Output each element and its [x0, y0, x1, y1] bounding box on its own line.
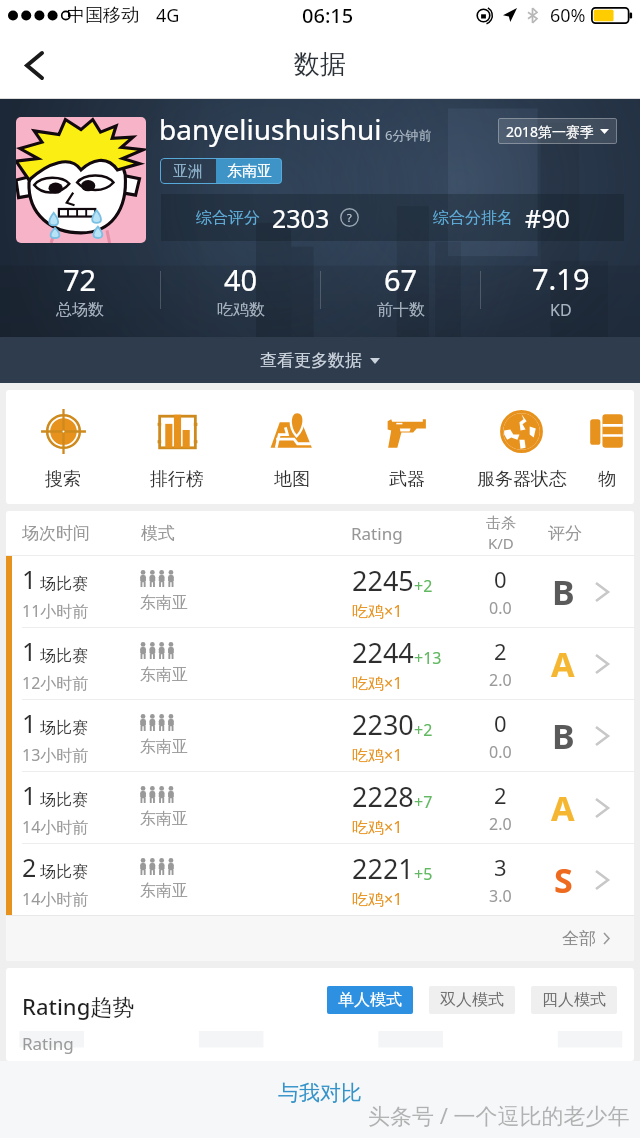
- staticText: 地图: [274, 468, 310, 491]
- staticText: 吃鸡数: [217, 300, 265, 320]
- staticText: 亚洲: [173, 162, 203, 181]
- staticText: 总场数: [56, 300, 104, 320]
- staticText: 2: [494, 636, 507, 666]
- staticText: 2018第一赛季: [506, 122, 595, 141]
- button[interactable]: 地图: [234, 390, 349, 504]
- staticText: 综合评分: [196, 208, 260, 228]
- staticText: 2.0: [489, 813, 512, 835]
- staticText: 2.0: [489, 669, 512, 691]
- staticText: 前十数: [377, 300, 425, 320]
- staticText: 4G: [156, 3, 180, 28]
- staticText: 物: [598, 468, 616, 491]
- staticText: 13小时前: [22, 744, 89, 766]
- button[interactable]: 四人模式: [531, 986, 617, 1014]
- staticText: 与我对比: [278, 1080, 362, 1106]
- staticText: 查看更多数据: [260, 350, 362, 371]
- button[interactable]: 排行榜: [120, 390, 234, 504]
- button[interactable]: Avatar: [16, 117, 146, 243]
- staticText: 67: [384, 260, 418, 299]
- staticText: 东南亚: [140, 809, 188, 829]
- staticText: ?: [347, 210, 352, 225]
- button[interactable]: 全部: [6, 916, 634, 961]
- button[interactable]: 双人模式: [429, 986, 515, 1014]
- staticText: 60%: [550, 3, 586, 28]
- staticText: 1: [22, 634, 37, 668]
- staticText: 1: [22, 562, 37, 596]
- staticText: +13: [414, 647, 442, 669]
- staticText: 场次时间: [22, 523, 90, 544]
- staticText: +5: [414, 863, 433, 885]
- staticText: 场比赛: [40, 718, 88, 738]
- staticText: 头条号 / 一个逗比的老少年: [368, 1100, 630, 1130]
- staticText: 场比赛: [40, 646, 88, 666]
- button[interactable]: 1: [6, 772, 634, 843]
- staticText: 东南亚: [140, 593, 188, 613]
- staticText: 7.19: [532, 259, 590, 298]
- staticText: 3: [494, 852, 507, 882]
- button[interactable]: 单人模式: [327, 986, 413, 1014]
- button[interactable]: 亚洲: [160, 158, 216, 184]
- staticText: S: [554, 857, 573, 903]
- staticText: 12小时前: [22, 672, 89, 694]
- staticText: 1: [22, 706, 37, 740]
- staticText: 武器: [389, 468, 425, 491]
- staticText: 单人模式: [338, 990, 402, 1010]
- staticText: 综合分排名: [433, 208, 513, 228]
- staticText: 全部: [562, 928, 596, 949]
- staticText: +2: [414, 719, 433, 741]
- staticText: 6分钟前: [385, 126, 432, 144]
- staticText: 吃鸡×1: [352, 744, 403, 766]
- staticText: 40: [224, 260, 258, 299]
- button[interactable]: Back: [0, 31, 68, 99]
- staticText: 0.0: [489, 741, 512, 763]
- staticText: 双人模式: [440, 990, 504, 1010]
- button[interactable]: 搜索: [6, 390, 120, 504]
- staticText: 0.0: [489, 597, 512, 619]
- button[interactable]: 2: [6, 844, 634, 915]
- button[interactable]: 物: [579, 390, 634, 504]
- staticText: 0: [494, 564, 507, 594]
- staticText: B: [552, 569, 575, 615]
- button[interactable]: 与我对比: [266, 1073, 374, 1113]
- staticText: 吃鸡×1: [352, 888, 403, 910]
- staticText: 东南亚: [140, 665, 188, 685]
- button[interactable]: 1: [6, 628, 634, 699]
- staticText: Rating: [22, 1032, 74, 1055]
- staticText: 四人模式: [542, 990, 606, 1010]
- staticText: 72: [63, 260, 97, 299]
- staticText: 2221: [352, 850, 414, 887]
- staticText: 3.0: [489, 885, 512, 907]
- staticText: 评分: [548, 523, 582, 544]
- staticText: 06:15: [302, 2, 354, 29]
- button[interactable]: 武器: [349, 390, 464, 504]
- staticText: 14小时前: [22, 816, 89, 838]
- staticText: 2: [494, 780, 507, 810]
- staticText: 2228: [352, 778, 414, 815]
- button[interactable]: 服务器状态: [464, 390, 579, 504]
- staticText: 吃鸡×1: [352, 672, 403, 694]
- staticText: 场比赛: [40, 790, 88, 810]
- staticText: 搜索: [45, 468, 81, 491]
- staticText: Rating: [351, 522, 403, 545]
- staticText: 14小时前: [22, 888, 89, 910]
- staticText: 2: [22, 850, 37, 884]
- staticText: B: [552, 713, 575, 759]
- staticText: 东南亚: [140, 737, 188, 757]
- staticText: 2230: [352, 706, 414, 743]
- button[interactable]: 查看更多数据: [0, 337, 640, 383]
- button[interactable]: 1: [6, 700, 634, 771]
- staticText: 东南亚: [227, 162, 272, 181]
- button[interactable]: 东南亚: [216, 158, 282, 184]
- staticText: +7: [414, 791, 433, 813]
- staticText: 模式: [141, 523, 175, 544]
- staticText: 排行榜: [150, 468, 204, 491]
- staticText: A: [551, 641, 575, 687]
- staticText: 吃鸡×1: [352, 600, 403, 622]
- button[interactable]: Help: [340, 208, 359, 227]
- button[interactable]: 1: [6, 556, 634, 627]
- staticText: banyeliushuishui: [159, 110, 382, 148]
- staticText: KD: [550, 299, 572, 321]
- staticText: 击杀: [486, 514, 516, 533]
- button[interactable]: 2018第一赛季: [498, 118, 617, 144]
- staticText: 东南亚: [140, 881, 188, 901]
